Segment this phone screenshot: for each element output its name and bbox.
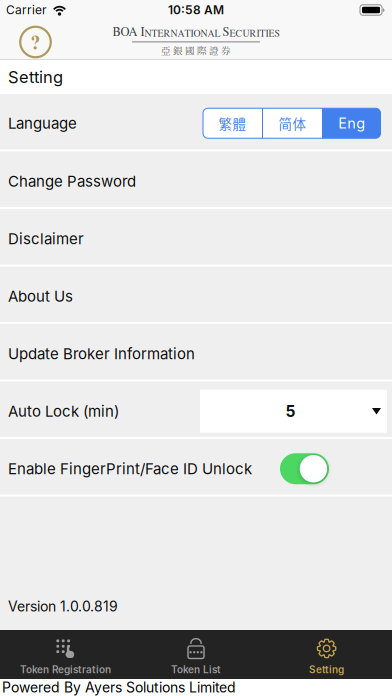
staticText: Powered By Ayers Solutions Limited: [2, 679, 236, 696]
staticText: Language: [8, 114, 77, 132]
staticText: 简体: [278, 113, 306, 133]
button[interactable]: Token Registration: [0, 627, 131, 681]
button[interactable]: Auto Lock minutes: [200, 390, 387, 433]
button[interactable]: Disclaimer: [0, 210, 392, 267]
staticText: Disclaimer: [8, 230, 84, 248]
button[interactable]: 简体: [263, 108, 322, 138]
staticText: Auto Lock (min): [8, 402, 119, 420]
staticText: About Us: [8, 287, 73, 305]
staticText: 5: [285, 402, 295, 421]
staticText: BOA I: [112, 23, 144, 39]
staticText: 亞 銀 國 際 證 券: [161, 43, 231, 57]
staticText: Setting: [8, 67, 63, 87]
staticText: Change Password: [8, 172, 136, 190]
button[interactable]: Token List: [131, 627, 261, 681]
staticText: Enable FingerPrint/Face ID Unlock: [8, 460, 252, 478]
staticText: Eng: [338, 114, 365, 132]
button[interactable]: Help: [19, 25, 52, 58]
button[interactable]: About Us: [0, 267, 392, 325]
staticText: Token Registration: [20, 663, 111, 676]
button[interactable]: Setting: [261, 627, 392, 681]
staticText: ECURITIES: [229, 26, 279, 39]
staticText: 繁體: [218, 113, 246, 133]
staticText: 10:58 AM: [168, 3, 224, 17]
staticText: Update Broker Information: [8, 345, 195, 363]
button[interactable]: 繁體: [203, 108, 262, 138]
button[interactable]: Change Password: [0, 152, 392, 210]
button[interactable]: Eng: [323, 108, 380, 138]
button[interactable]: Update Broker Information: [0, 325, 392, 382]
staticText: Version 1.0.0.819: [8, 598, 118, 615]
staticText: Setting: [309, 663, 344, 676]
staticText: ?: [30, 28, 40, 56]
button[interactable]: Enable FingerPrint/Face ID Unlock: [280, 453, 329, 484]
staticText: NTERNATIONAL: [144, 26, 222, 39]
staticText: S: [222, 23, 229, 39]
staticText: Token List: [171, 663, 221, 676]
staticText: Carrier: [6, 3, 47, 17]
